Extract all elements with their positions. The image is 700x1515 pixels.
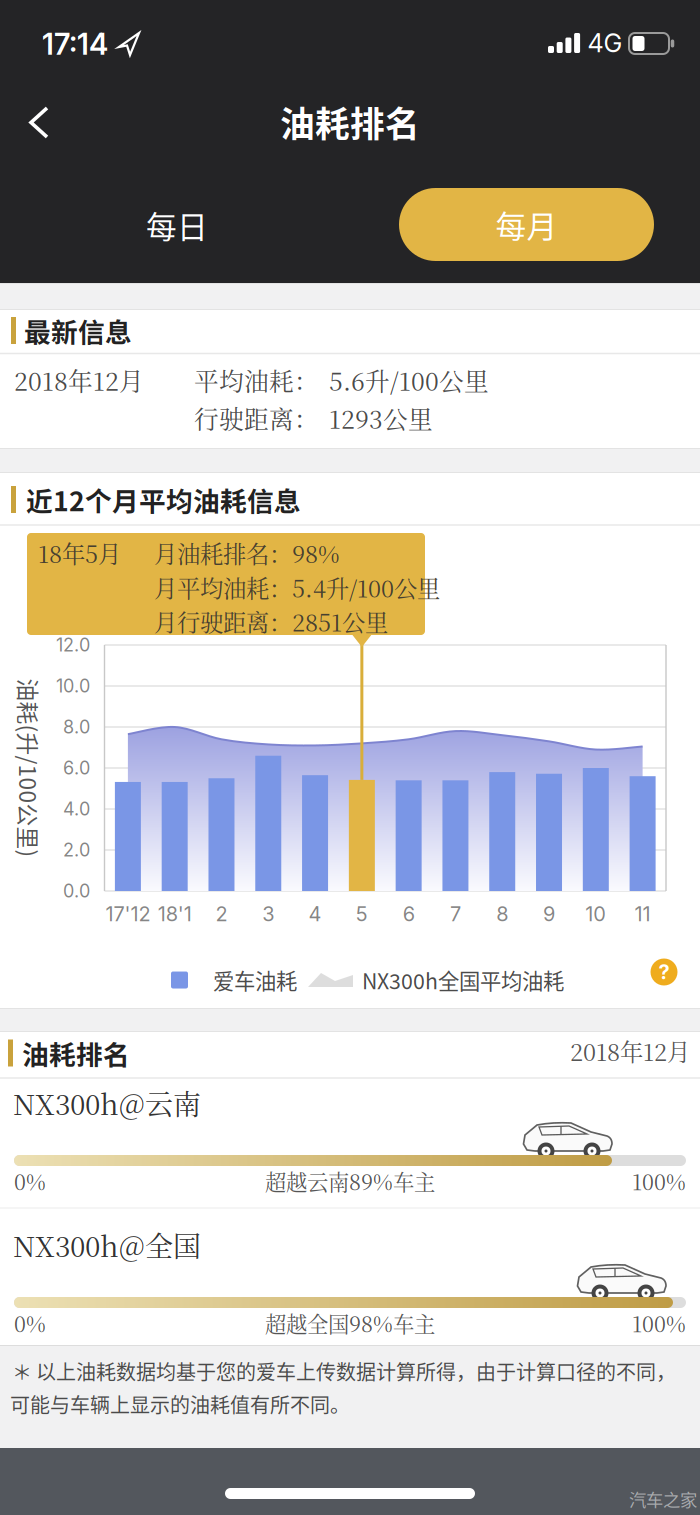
staticText: 12.0 bbox=[56, 634, 90, 656]
button[interactable]: Back bbox=[28, 106, 50, 139]
staticText: 油耗排名 bbox=[280, 97, 420, 147]
staticText: 爱车油耗 bbox=[213, 965, 297, 995]
staticText: 4.0 bbox=[63, 798, 90, 820]
staticText: 8.0 bbox=[63, 716, 90, 738]
staticText: 10.0 bbox=[56, 675, 90, 697]
staticText: 油耗(升/100公里) bbox=[0, 752, 118, 784]
staticText: 2018年12月 bbox=[14, 362, 144, 398]
staticText: 月行驶距离：2851公里 bbox=[154, 605, 388, 638]
staticText: 可能与车辆上显示的油耗值有所不同。 bbox=[10, 1389, 350, 1418]
staticText: 行驶距离： bbox=[194, 400, 319, 436]
staticText: 平均油耗： bbox=[194, 362, 319, 398]
staticText: ＊ 以上油耗数据均基于您的爱车上传数据计算所得，由于计算口径的不同， bbox=[12, 1356, 676, 1385]
staticText: 17'12 bbox=[105, 902, 150, 926]
staticText: 0% bbox=[14, 1308, 46, 1338]
staticText: 0% bbox=[14, 1166, 46, 1196]
staticText: 5 bbox=[356, 902, 368, 926]
staticText: 每日 bbox=[146, 203, 208, 247]
staticText: 0.0 bbox=[63, 880, 90, 902]
staticText: 2 bbox=[215, 902, 227, 926]
staticText: 18年5月 bbox=[38, 536, 121, 570]
staticText: 2018年12月 bbox=[570, 1034, 690, 1068]
staticText: 油耗排名 bbox=[22, 1034, 130, 1072]
staticText: 11 bbox=[635, 902, 651, 926]
staticText: NX300h@云南 bbox=[13, 1083, 201, 1123]
staticText: 100% bbox=[632, 1308, 686, 1338]
button[interactable]: 每日 bbox=[107, 203, 247, 247]
staticText: 月平均油耗：5.4升/100公里 bbox=[154, 571, 440, 604]
staticText: 9 bbox=[543, 902, 555, 926]
staticText: 最新信息 bbox=[24, 311, 132, 350]
staticText: 每月 bbox=[495, 202, 557, 247]
staticText: 6.0 bbox=[63, 757, 90, 779]
staticText: 近12个月平均油耗信息 bbox=[26, 480, 301, 519]
staticText: 7 bbox=[450, 902, 461, 926]
staticText: 超越云南89%车主 bbox=[265, 1166, 435, 1196]
staticText: 4G bbox=[587, 28, 622, 58]
staticText: 月油耗排名：98% bbox=[154, 536, 340, 570]
staticText: 5.6升/100公里 bbox=[329, 362, 489, 398]
staticText: 18'1 bbox=[158, 902, 192, 926]
staticText: NX300h全国平均油耗 bbox=[362, 965, 564, 995]
staticText: 3 bbox=[262, 902, 274, 926]
staticText: 6 bbox=[403, 902, 415, 926]
staticText: 10 bbox=[585, 902, 606, 926]
staticText: 100% bbox=[632, 1166, 686, 1196]
staticText: 8 bbox=[496, 902, 508, 926]
staticText: 汽车之家 bbox=[629, 1486, 697, 1512]
button[interactable]: 每月 bbox=[399, 188, 654, 261]
staticText: 超越全国98%车主 bbox=[265, 1308, 435, 1338]
staticText: 2.0 bbox=[63, 839, 90, 861]
staticText: ? bbox=[658, 960, 669, 984]
button[interactable]: Help bbox=[650, 958, 677, 985]
staticText: 17:14 bbox=[42, 26, 108, 62]
staticText: NX300h@全国 bbox=[13, 1225, 201, 1265]
staticText: 1293公里 bbox=[329, 400, 433, 436]
staticText: 4 bbox=[309, 902, 322, 926]
